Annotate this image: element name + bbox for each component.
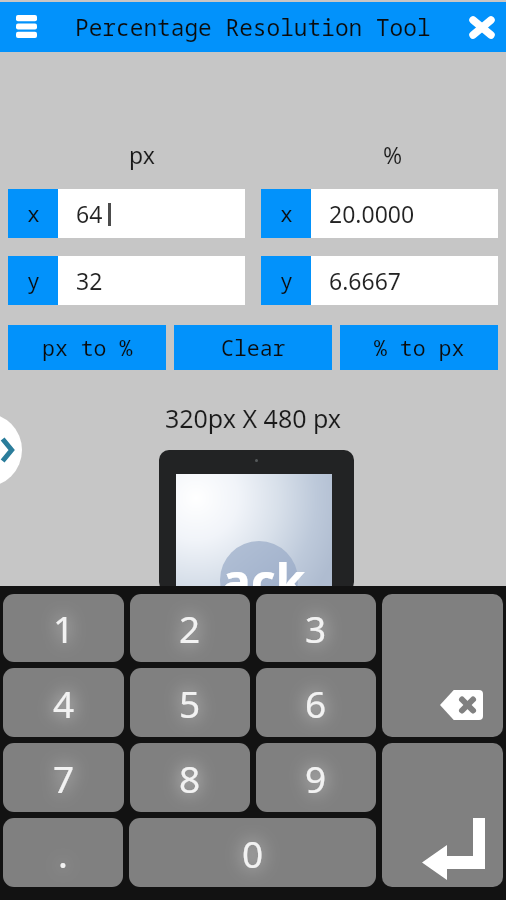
button[interactable]: Open drawer (0, 413, 22, 487)
staticText: y (27, 266, 40, 295)
button[interactable]: Close (458, 3, 506, 51)
button[interactable]: 8 (130, 743, 250, 812)
staticText: 6.6667 (329, 265, 401, 296)
staticText: 8 (179, 753, 201, 803)
staticText: 9 (305, 753, 327, 803)
button[interactable]: 6 (256, 668, 376, 737)
staticText: ack (222, 548, 306, 592)
staticText: 6 (305, 678, 327, 728)
staticText: 320px X 480 px (0, 401, 506, 435)
staticText: . (58, 828, 68, 878)
button[interactable]: 4 (3, 668, 124, 737)
button[interactable]: Clear (174, 325, 332, 370)
staticText: x (280, 199, 293, 228)
staticText: 32 (76, 265, 103, 296)
button[interactable]: 1 (3, 594, 124, 662)
staticText: 2 (179, 603, 201, 653)
staticText: 3 (305, 603, 327, 653)
staticText: 1 (53, 603, 75, 653)
staticText: 0 (242, 828, 264, 878)
button[interactable]: 7 (3, 743, 124, 812)
staticText: 7 (53, 753, 75, 803)
button[interactable]: Enter (382, 743, 503, 887)
button[interactable]: Menu (0, 3, 48, 51)
button[interactable]: . (3, 818, 123, 887)
staticText: 5 (179, 678, 201, 728)
button[interactable]: y (261, 256, 498, 305)
staticText: px (129, 139, 155, 170)
button[interactable]: 3 (256, 594, 376, 662)
button[interactable]: Backspace (382, 594, 503, 737)
button[interactable]: x (261, 189, 498, 238)
staticText: % to px (374, 333, 465, 362)
button[interactable]: px to % (8, 325, 166, 370)
staticText: px to % (42, 333, 133, 362)
button[interactable]: x (8, 189, 245, 238)
staticText: y (280, 266, 293, 295)
staticText: % (383, 139, 403, 170)
button[interactable]: % to px (340, 325, 498, 370)
staticText: 64 (76, 198, 103, 229)
staticText: x (27, 199, 40, 228)
button[interactable]: y (8, 256, 245, 305)
staticText: Clear (221, 333, 286, 362)
button[interactable]: 2 (130, 594, 250, 662)
staticText: 20.0000 (329, 198, 415, 229)
button[interactable]: 9 (256, 743, 376, 812)
button[interactable]: 5 (130, 668, 250, 737)
staticText: 4 (53, 678, 75, 728)
staticText: Percentage Resolution Tool (75, 12, 431, 43)
button[interactable]: 0 (129, 818, 376, 887)
